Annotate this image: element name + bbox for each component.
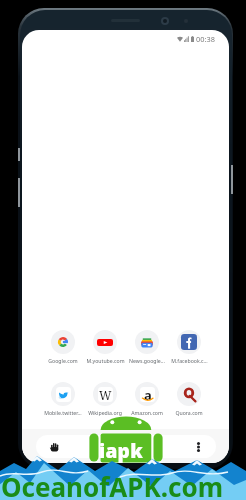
staticText: M.facebook.c... <box>171 357 208 364</box>
button[interactable]: Quora.com <box>168 382 210 416</box>
staticText: OceanofAPK.com <box>1 469 224 500</box>
button[interactable]: Google.com <box>42 330 84 364</box>
button[interactable]: More options <box>180 435 216 458</box>
staticText: News.google... <box>129 357 165 364</box>
staticText: Wikipedia.org <box>88 409 122 416</box>
button[interactable]: Gesture <box>36 435 72 458</box>
button[interactable]: News.google... <box>126 330 168 364</box>
button[interactable]: M.youtube.com <box>84 330 126 364</box>
staticText: iapk <box>99 438 143 464</box>
button[interactable]: Mobile.twitter... <box>42 382 84 416</box>
staticText: Mobile.twitter... <box>44 409 82 416</box>
button[interactable]: W <box>84 382 126 416</box>
staticText: 00:38 <box>196 34 215 44</box>
button[interactable]: a <box>126 382 168 416</box>
button[interactable]: M.facebook.c... <box>168 330 210 364</box>
staticText: M.youtube.com <box>86 357 125 364</box>
staticText: Quora.com <box>175 409 203 416</box>
button[interactable]: Gesture <box>36 435 216 458</box>
staticText: a <box>144 387 152 401</box>
staticText: Amazon.com <box>131 409 163 416</box>
staticText: W <box>99 387 112 402</box>
staticText: Google.com <box>48 357 78 364</box>
